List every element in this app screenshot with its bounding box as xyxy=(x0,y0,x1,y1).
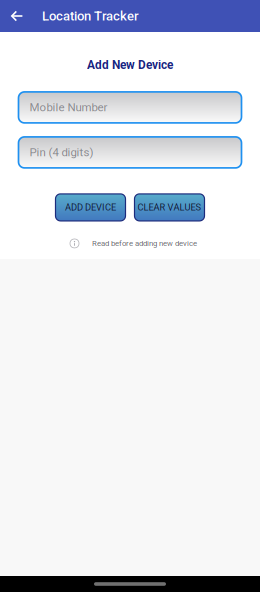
button[interactable]: Pin (4 digits) xyxy=(18,137,241,168)
staticText: ADD DEVICE xyxy=(65,202,116,213)
staticText: Location Tracker xyxy=(42,8,139,24)
button[interactable]: ADD DEVICE xyxy=(55,194,125,221)
button[interactable]: Mobile Number xyxy=(18,92,241,123)
staticText: Read before adding new device xyxy=(92,239,197,248)
staticText: Mobile Number xyxy=(29,101,107,114)
button[interactable]: CLEAR VALUES xyxy=(134,194,204,221)
staticText: CLEAR VALUES xyxy=(137,202,201,213)
button[interactable]: Back xyxy=(0,0,42,32)
staticText: Pin (4 digits) xyxy=(29,146,93,159)
staticText: Add New Device xyxy=(87,58,173,72)
